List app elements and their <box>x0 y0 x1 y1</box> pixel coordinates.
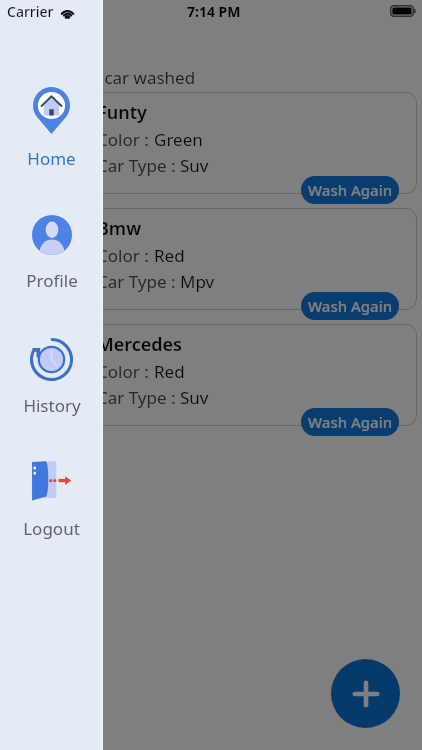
staticText: Car Type : <box>97 270 180 293</box>
staticText: Funty <box>97 100 147 125</box>
button[interactable]: Bmw <box>88 208 417 310</box>
staticText: Car Type : <box>97 154 180 177</box>
staticText: Profile <box>26 269 78 292</box>
button[interactable]: Wash Again <box>301 292 399 320</box>
staticText: Home <box>27 147 76 170</box>
staticText: Wash Again <box>308 180 393 200</box>
staticText: Suv <box>180 386 209 409</box>
button[interactable]: Mercedes <box>88 324 417 426</box>
button[interactable]: History <box>0 338 103 417</box>
staticText: Get your car washed <box>31 66 196 89</box>
staticText: Color : <box>97 360 154 383</box>
staticText: Bmw <box>97 216 142 241</box>
staticText: Logout <box>23 517 80 540</box>
button[interactable]: Wash Again <box>301 408 399 436</box>
button[interactable]: Profile <box>0 215 103 292</box>
staticText: Red <box>154 244 185 267</box>
staticText: Mercedes <box>97 332 182 357</box>
staticText: Red <box>154 360 185 383</box>
staticText: Mpv <box>180 270 215 293</box>
button[interactable]: Funty <box>88 92 417 194</box>
staticText: 7:14 PM <box>187 2 241 21</box>
button[interactable]: Wash Again <box>301 176 399 204</box>
staticText: Wash Again <box>308 296 393 316</box>
staticText: Car Type : <box>97 386 180 409</box>
staticText: Green <box>154 128 203 151</box>
staticText: Color : <box>97 244 154 267</box>
staticText: Suv <box>180 154 209 177</box>
staticText: Color : <box>97 128 154 151</box>
button[interactable]: Add <box>331 659 400 728</box>
staticText: Wash Again <box>308 412 393 432</box>
staticText: History <box>23 394 81 417</box>
button[interactable]: Home <box>0 87 103 170</box>
button[interactable]: Logout <box>0 458 103 540</box>
staticText: Carrier <box>7 2 54 21</box>
